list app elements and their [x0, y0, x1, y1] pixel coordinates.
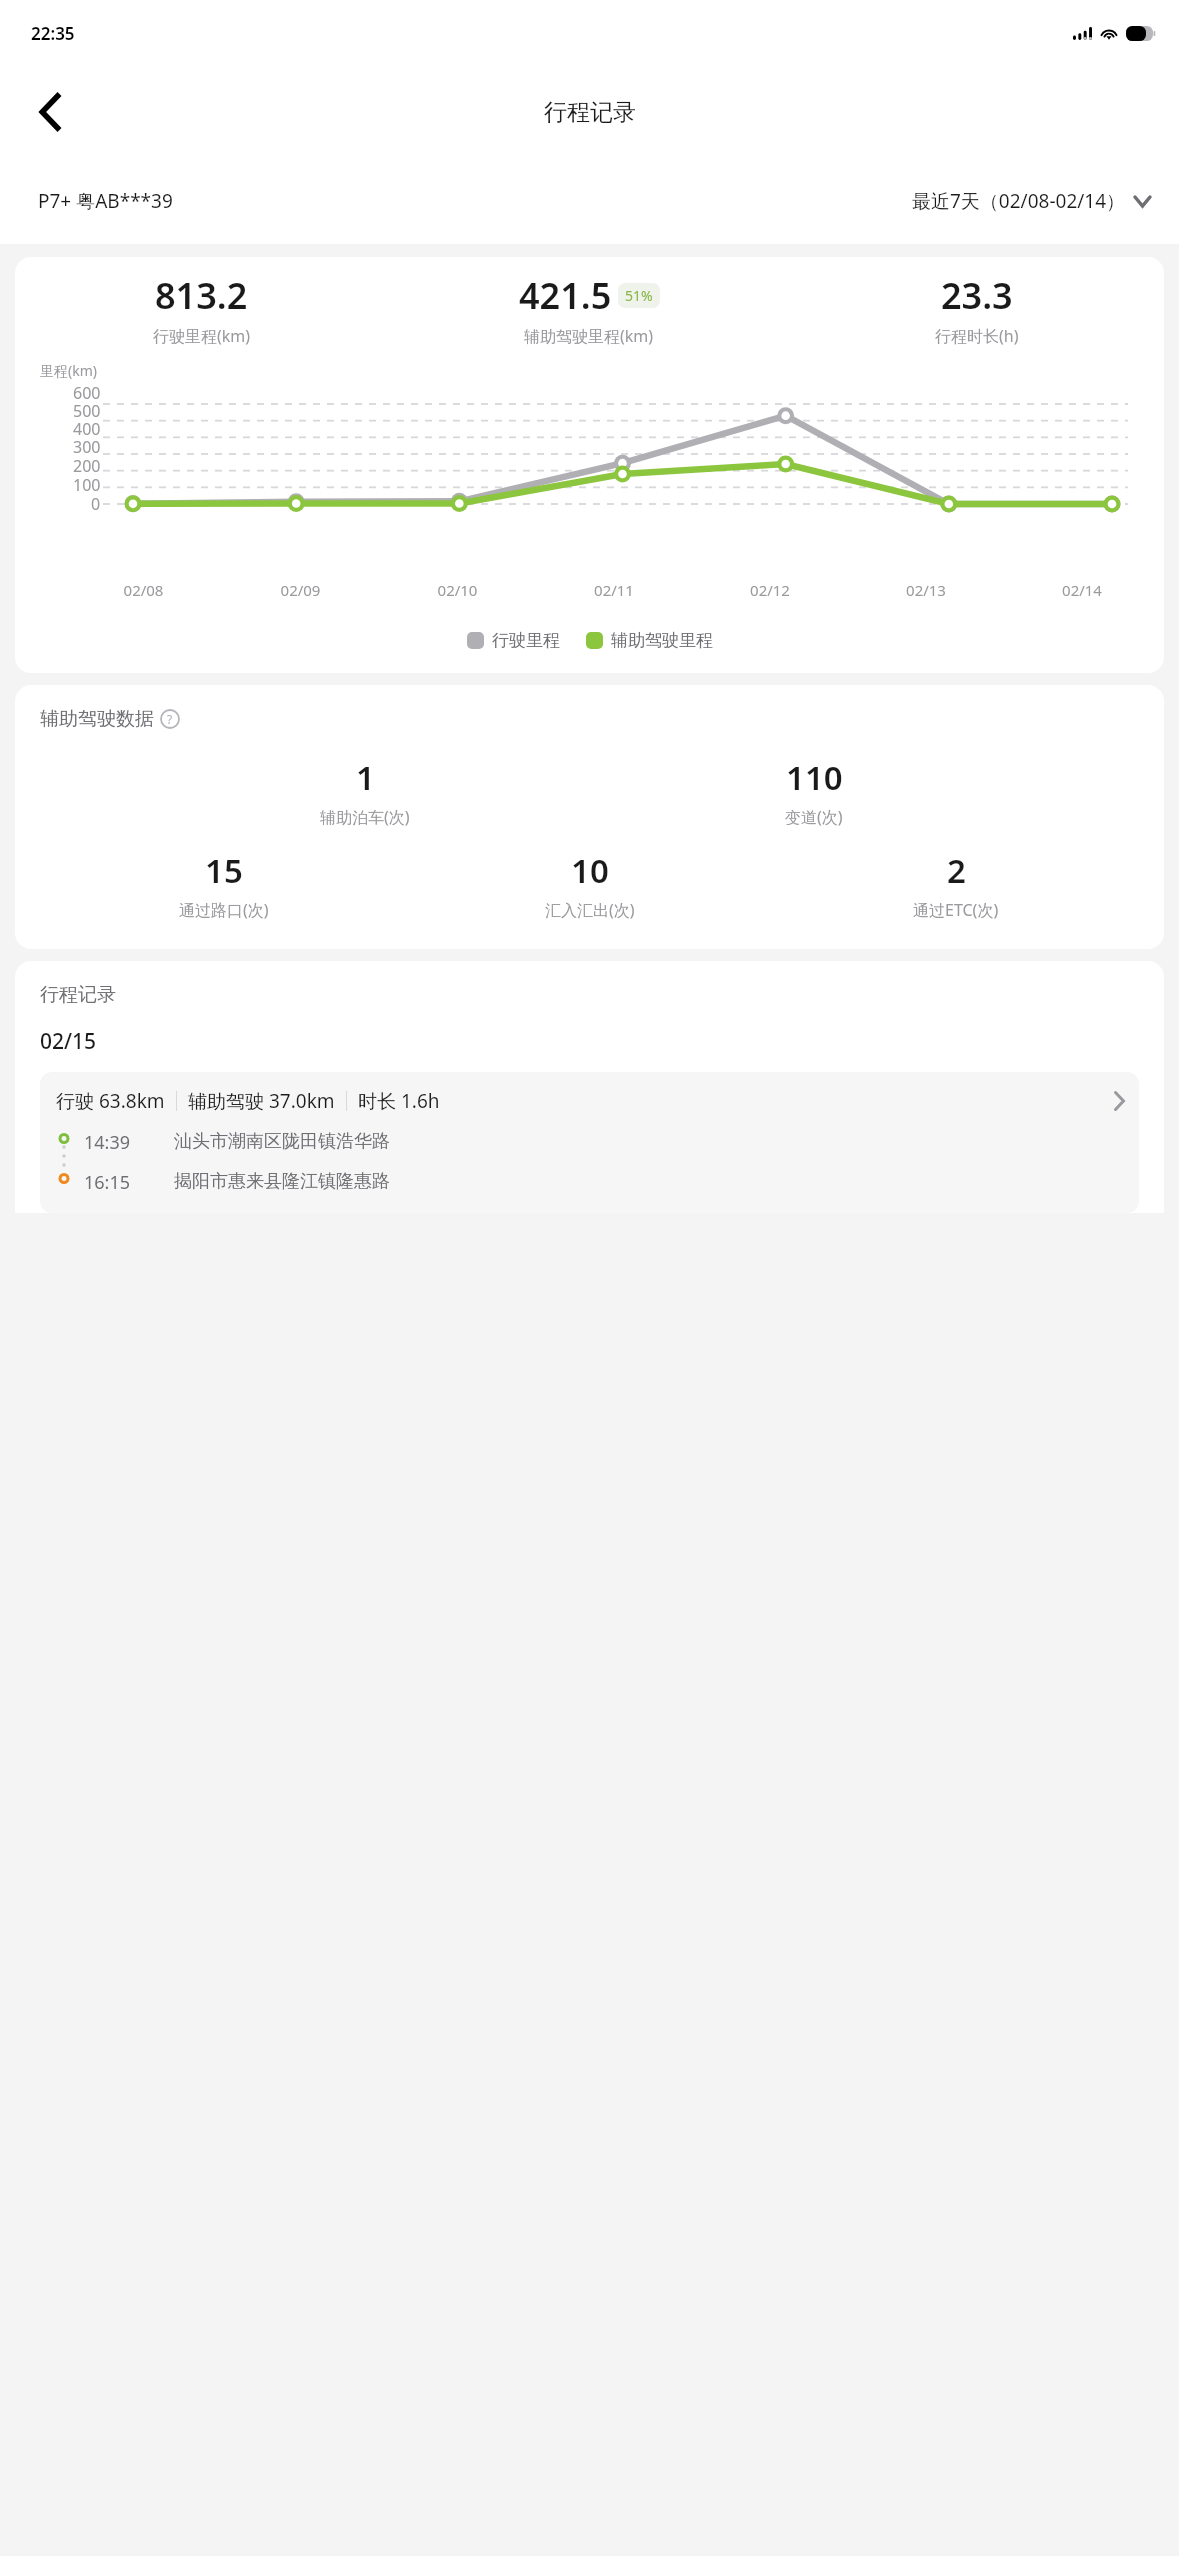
- staticText: 2: [947, 848, 966, 893]
- staticText: 02/08: [65, 580, 222, 600]
- staticText: 10: [571, 848, 609, 893]
- staticText: 51%: [625, 286, 653, 305]
- staticText: 300: [73, 436, 101, 455]
- staticText: 行程记录: [40, 983, 116, 1007]
- staticText: 22:35: [31, 22, 75, 45]
- staticText: 23.3: [941, 271, 1013, 320]
- staticText: 时长 1.6h: [358, 1088, 440, 1114]
- staticText: 汇入汇出(次): [545, 899, 635, 921]
- staticText: 200: [73, 455, 101, 474]
- staticText: 辅助泊车(次): [320, 806, 410, 828]
- staticText: 500: [73, 400, 101, 418]
- staticText: 813.2: [155, 271, 248, 320]
- staticText: 最近7天（02/08-02/14）: [912, 188, 1126, 214]
- staticText: 行驶里程: [492, 630, 560, 651]
- staticText: 15: [205, 848, 243, 893]
- staticText: 辅助驾驶数据: [40, 707, 154, 731]
- staticText: 通过路口(次): [179, 899, 269, 921]
- button[interactable]: 最近7天（02/08-02/14）: [912, 188, 1151, 214]
- staticText: 辅助驾驶里程(km): [524, 325, 654, 347]
- staticText: 02/14: [1004, 580, 1160, 600]
- staticText: 02/15: [40, 1027, 97, 1056]
- staticText: 0: [91, 493, 101, 512]
- staticText: 通过ETC(次): [913, 899, 999, 921]
- staticText: 14:39: [84, 1130, 164, 1155]
- button[interactable]: 行驶里程: [467, 630, 560, 651]
- staticText: 421.5: [519, 271, 612, 320]
- button[interactable]: P7+ 粤AB***39: [38, 188, 173, 214]
- button[interactable]: Back: [22, 83, 80, 141]
- staticText: 变道(次): [785, 806, 843, 828]
- staticText: 400: [73, 418, 101, 436]
- staticText: 行驶里程(km): [153, 325, 251, 347]
- staticText: ?: [167, 711, 173, 727]
- staticText: 汕头市潮南区陇田镇浩华路: [174, 1130, 390, 1153]
- button[interactable]: Help: [160, 709, 180, 729]
- button[interactable]: 行驶 63.8km: [40, 1072, 1139, 1213]
- staticText: 揭阳市惠来县隆江镇隆惠路: [174, 1170, 390, 1193]
- staticText: 02/10: [379, 580, 536, 600]
- staticText: 02/13: [848, 580, 1004, 600]
- staticText: 02/12: [692, 580, 848, 600]
- staticText: 辅助驾驶 37.0km: [188, 1088, 335, 1114]
- staticText: 02/09: [222, 580, 379, 600]
- staticText: 行驶 63.8km: [56, 1088, 165, 1114]
- staticText: 100: [73, 474, 101, 493]
- staticText: 辅助驾驶里程: [611, 630, 713, 651]
- staticText: 16:15: [84, 1170, 164, 1195]
- staticText: 里程(km): [40, 361, 97, 380]
- staticText: 600: [73, 382, 101, 400]
- staticText: 02/11: [536, 580, 692, 600]
- staticText: 1: [356, 755, 375, 800]
- staticText: 110: [786, 755, 843, 800]
- staticText: 行程时长(h): [935, 325, 1019, 347]
- staticText: 行程记录: [544, 98, 636, 127]
- button[interactable]: 辅助驾驶里程: [586, 630, 713, 651]
